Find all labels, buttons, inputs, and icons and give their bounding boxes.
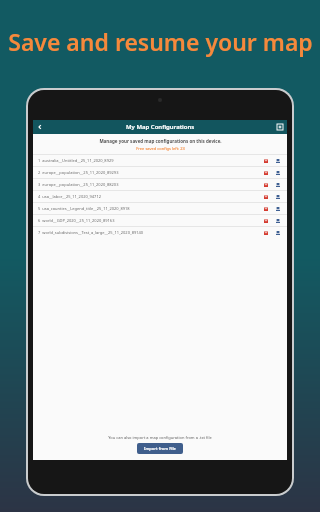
button[interactable]: Delete — [261, 180, 270, 189]
staticText: Import from File — [144, 446, 176, 451]
button[interactable]: Delete — [261, 168, 270, 177]
staticText: My Map Configurations — [126, 123, 195, 131]
button[interactable]: 2 europe__population__25_11_2020_89293 — [33, 166, 287, 178]
button[interactable]: Download — [273, 180, 282, 189]
button[interactable]: Download — [273, 156, 282, 165]
button[interactable]: 7 world_subdivisions__Test_a_large__25_1… — [33, 226, 287, 238]
button[interactable]: Import from File — [137, 443, 183, 454]
button[interactable]: Download — [273, 228, 282, 237]
button[interactable]: 5 usa_counties__Legend_title__25_11_2020… — [33, 202, 287, 214]
staticText: Save and resume your map — [8, 26, 313, 57]
button[interactable]: 3 europe__population__25_11_2020_88203 — [33, 178, 287, 190]
button[interactable]: Delete — [261, 156, 270, 165]
staticText: 1 australia__Untitled__25_11_2020_8929 — [38, 158, 261, 163]
button[interactable]: 6 world__GDP_2020__25_11_2020_89163 — [33, 214, 287, 226]
button[interactable]: Delete — [261, 216, 270, 225]
button[interactable]: Delete — [261, 228, 270, 237]
staticText: 3 europe__population__25_11_2020_88203 — [38, 182, 261, 187]
button[interactable]: Free saved configs left: 23 — [136, 146, 185, 151]
button[interactable]: 1 australia__Untitled__25_11_2020_8929 — [33, 154, 287, 166]
button[interactable]: Back — [33, 120, 47, 134]
staticText: Free saved configs left: 23 — [136, 146, 185, 151]
staticText: 5 usa_counties__Legend_title__25_11_2020… — [38, 206, 261, 211]
button[interactable]: Download — [273, 204, 282, 213]
button[interactable]: Delete — [261, 204, 270, 213]
button[interactable]: Delete — [261, 192, 270, 201]
button[interactable]: Download — [273, 168, 282, 177]
staticText: 4 usa__labor__25_11_2020_94712 — [38, 194, 261, 199]
staticText: You can also import a map configuration … — [108, 435, 212, 440]
staticText: 7 world_subdivisions__Test_a_large__25_1… — [38, 230, 261, 235]
staticText: Manage your saved map configurations on … — [99, 138, 222, 144]
button[interactable]: Download — [273, 192, 282, 201]
button[interactable]: 4 usa__labor__25_11_2020_94712 — [33, 190, 287, 202]
staticText: 2 europe__population__25_11_2020_89293 — [38, 170, 261, 175]
button[interactable]: Download — [273, 216, 282, 225]
staticText: 6 world__GDP_2020__25_11_2020_89163 — [38, 218, 261, 223]
button[interactable]: Save — [273, 120, 287, 134]
